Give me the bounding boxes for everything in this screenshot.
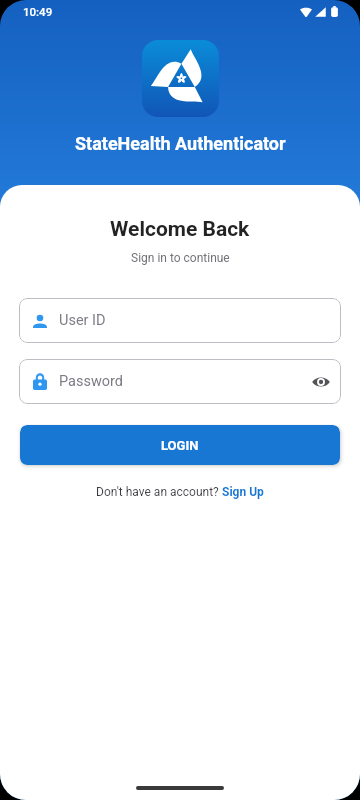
button[interactable]: Sign Up: [222, 485, 264, 499]
button[interactable]: Password: [19, 359, 341, 404]
staticText: 10:49: [23, 5, 53, 18]
staticText: Password: [59, 373, 124, 390]
staticText: User ID: [59, 312, 106, 329]
button[interactable]: Show password: [309, 370, 333, 394]
staticText: Sign in to continue: [131, 251, 230, 265]
staticText: Don't have an account?: [96, 485, 222, 499]
staticText: StateHealth Authenticator: [75, 133, 286, 154]
button[interactable]: LOGIN: [20, 425, 340, 465]
staticText: Welcome Back: [110, 217, 250, 242]
staticText: Sign Up: [222, 485, 264, 499]
staticText: LOGIN: [161, 438, 199, 453]
button[interactable]: User ID: [19, 298, 341, 343]
